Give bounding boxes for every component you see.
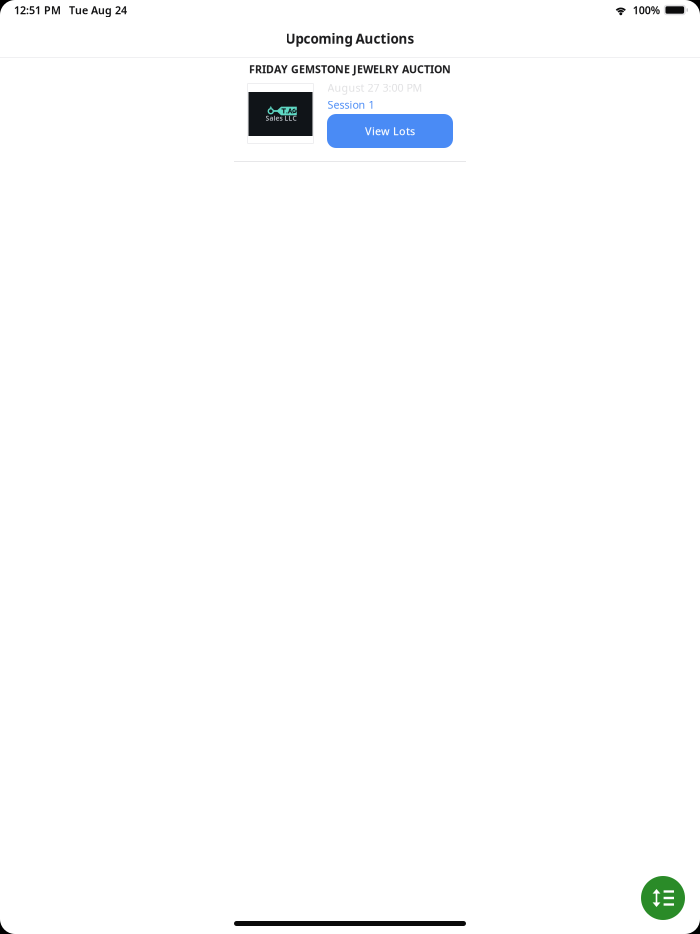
button[interactable]: Session 1 <box>327 96 452 113</box>
staticText: FRIDAY GEMSTONE JEWELRY AUCTION <box>249 62 451 76</box>
staticText: Session 1 <box>327 97 374 112</box>
staticText: 100% <box>633 3 660 17</box>
staticText: 12:51 PM <box>14 3 61 17</box>
button[interactable]: View Lots <box>327 114 453 148</box>
staticText: Tue Aug 24 <box>69 3 127 17</box>
staticText: Sales LLC <box>265 114 296 123</box>
staticText: Upcoming Auctions <box>285 30 414 47</box>
staticText: August 27 3:00 PM <box>327 80 422 95</box>
staticText: View Lots <box>365 124 415 138</box>
button[interactable]: T.A.G. Sales LLC auction catalog <box>247 83 313 143</box>
button[interactable]: Sort <box>641 876 685 920</box>
